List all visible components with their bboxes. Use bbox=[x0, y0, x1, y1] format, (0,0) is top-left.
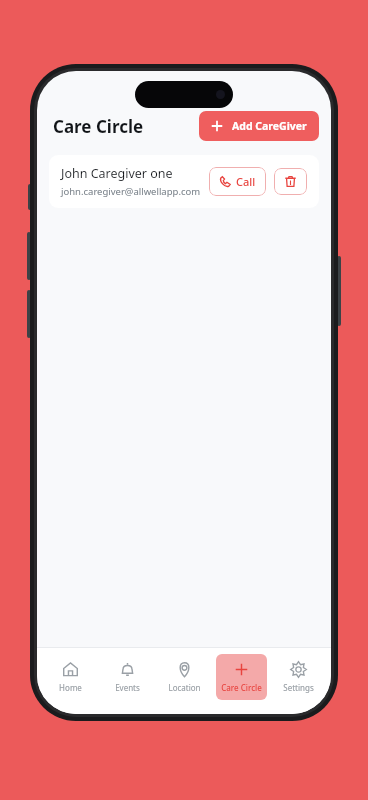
button[interactable]: Settings bbox=[273, 654, 324, 700]
staticText: Home bbox=[59, 682, 82, 693]
button[interactable]: John Caregiver one bbox=[49, 155, 319, 208]
staticText: Care Circle bbox=[53, 115, 144, 138]
button[interactable]: Call bbox=[209, 167, 266, 196]
staticText: Call bbox=[236, 174, 256, 189]
staticText: Events bbox=[115, 682, 140, 693]
staticText: Location bbox=[168, 682, 201, 693]
button[interactable]: Location bbox=[159, 654, 210, 700]
staticText: Care Circle bbox=[221, 682, 262, 693]
button[interactable]: Delete caregiver bbox=[274, 168, 307, 195]
button[interactable]: Add CareGiver bbox=[199, 111, 319, 141]
staticText: Add CareGiver bbox=[232, 119, 307, 133]
staticText: john.caregiver@allwellapp.com bbox=[61, 185, 201, 198]
staticText: Settings bbox=[283, 682, 314, 693]
button[interactable]: Home bbox=[44, 654, 96, 700]
staticText: John Caregiver one bbox=[61, 165, 173, 182]
button[interactable]: Care Circle bbox=[216, 654, 267, 700]
button[interactable]: Events bbox=[102, 654, 153, 700]
